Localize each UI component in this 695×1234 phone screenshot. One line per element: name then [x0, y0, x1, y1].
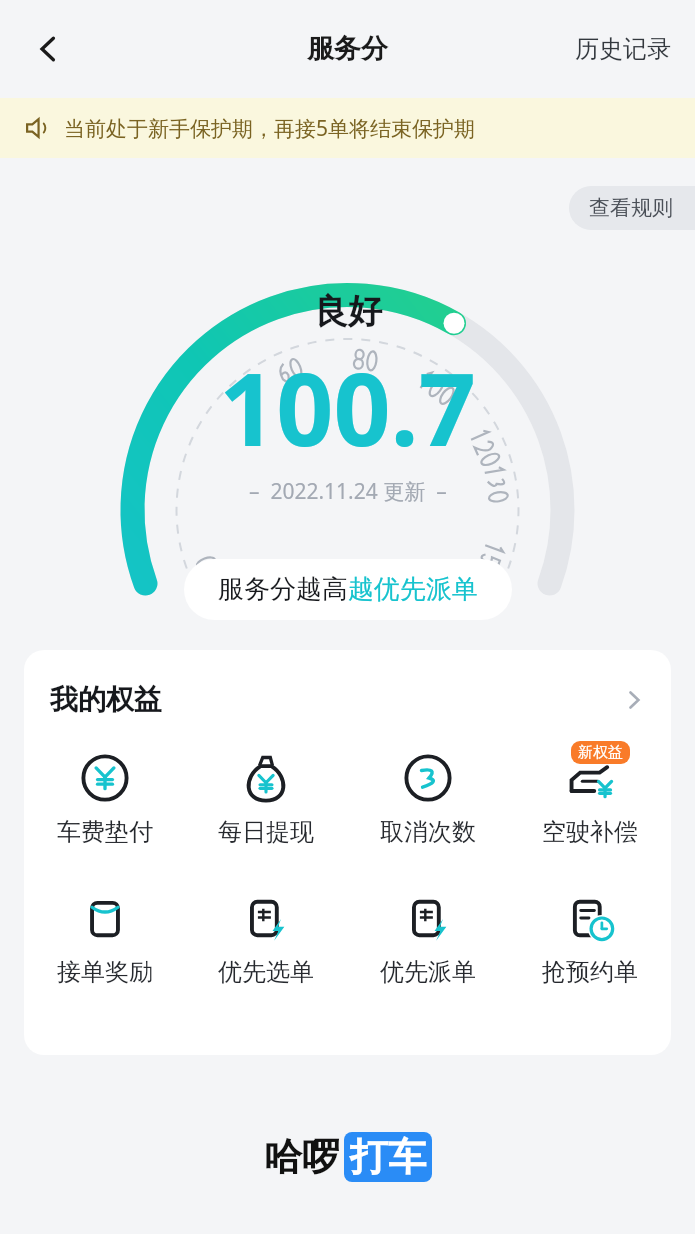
- button[interactable]: 接单奖励: [24, 885, 185, 991]
- button[interactable]: 优先派单: [347, 885, 509, 991]
- staticText: 当前处于新手保护期，再接5单将结束保护期: [64, 114, 476, 143]
- staticText: 打车: [350, 1133, 426, 1181]
- staticText: 抢预约单: [542, 957, 638, 987]
- button[interactable]: 历史记录: [551, 24, 695, 74]
- button[interactable]: 取消次数: [347, 745, 509, 851]
- staticText: 查看规则: [589, 195, 673, 221]
- staticText: 取消次数: [380, 817, 476, 847]
- button[interactable]: Back: [22, 23, 74, 75]
- button[interactable]: 新权益: [509, 745, 671, 851]
- button[interactable]: 每日提现: [185, 745, 347, 851]
- button[interactable]: 车费垫付: [24, 745, 185, 851]
- staticText: 良好: [314, 290, 382, 333]
- button[interactable]: 当前处于新手保护期，再接5单将结束保护期: [0, 98, 695, 158]
- button[interactable]: 服务分越高越优先派单: [184, 559, 512, 620]
- button[interactable]: 优先选单: [185, 885, 347, 991]
- staticText: 车费垫付: [57, 817, 153, 847]
- staticText: 服务分越高越优先派单: [218, 573, 478, 606]
- staticText: 100.7: [219, 339, 476, 475]
- button[interactable]: 抢预约单: [509, 885, 671, 991]
- staticText: 历史记录: [575, 34, 671, 64]
- staticText: – 2022.11.24 更新 –: [249, 477, 447, 506]
- staticText: 服务分: [307, 32, 388, 66]
- staticText: 我的权益: [50, 682, 162, 717]
- staticText: 哈啰: [264, 1133, 340, 1181]
- staticText: 接单奖励: [57, 957, 153, 987]
- staticText: 新权益: [578, 743, 623, 762]
- button[interactable]: 我的权益: [24, 650, 671, 723]
- staticText: 空驶补偿: [542, 817, 638, 847]
- staticText: 优先选单: [218, 957, 314, 987]
- button[interactable]: 查看规则: [569, 186, 695, 230]
- staticText: 优先派单: [380, 957, 476, 987]
- staticText: 每日提现: [218, 817, 314, 847]
